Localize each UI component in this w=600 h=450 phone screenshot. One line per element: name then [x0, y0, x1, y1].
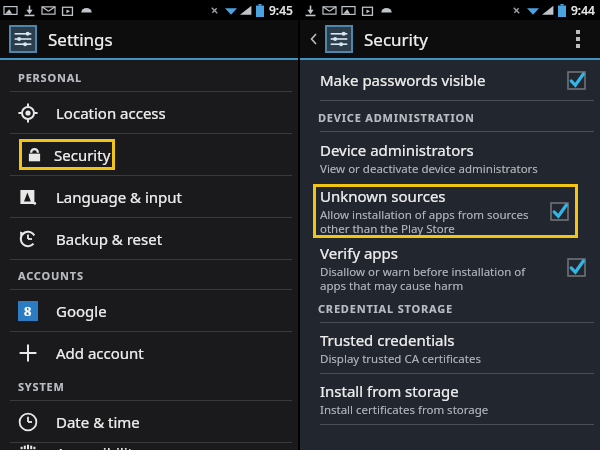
button[interactable]: Verify apps [300, 238, 600, 297]
staticText: 9:44 [571, 2, 595, 18]
button[interactable]: Backup & reset [0, 218, 298, 259]
staticText: Display trusted CA certificates [320, 351, 481, 367]
staticText: PERSONAL [18, 70, 83, 85]
staticText: Language & input [56, 187, 182, 207]
staticText: Make passwords visible [320, 70, 486, 90]
button[interactable]: Security [19, 139, 115, 170]
button[interactable]: Trusted credentials [300, 323, 600, 373]
staticText: ACCOUNTS [18, 268, 84, 283]
button[interactable]: Back [305, 30, 323, 48]
button[interactable]: Language & input [0, 176, 298, 217]
staticText: Security [364, 28, 428, 51]
button[interactable]: Toggle [550, 202, 569, 221]
staticText: Verify apps [320, 243, 398, 263]
staticText: Accessibility [56, 443, 141, 450]
button[interactable]: Settings [10, 26, 36, 52]
staticText: Location access [56, 103, 166, 123]
staticText: 9:45 [269, 2, 293, 18]
button[interactable]: More options [564, 25, 592, 53]
button[interactable]: 8 [0, 290, 298, 331]
staticText: CREDENTIAL STORAGE [318, 301, 453, 316]
button[interactable]: Date & time [0, 401, 298, 442]
staticText: Backup & reset [56, 229, 163, 249]
button[interactable]: Device administrators [300, 132, 600, 184]
button[interactable]: Toggle [567, 258, 586, 277]
button[interactable]: Unknown sources [313, 184, 578, 238]
button[interactable]: Make passwords visible [300, 60, 600, 100]
staticText: Allow installation of apps from sources … [320, 207, 529, 236]
staticText: Install certificates from storage [320, 402, 489, 418]
staticText: View or deactivate device administrators [320, 161, 538, 177]
staticText: Disallow or warn before installation of … [320, 264, 526, 293]
staticText: DEVICE ADMINISTRATION [318, 110, 475, 125]
staticText: Unknown sources [320, 186, 446, 206]
button[interactable]: Location access [0, 92, 298, 133]
button[interactable]: Toggle [567, 71, 586, 90]
staticText: Install from storage [320, 381, 459, 401]
staticText: Trusted credentials [320, 330, 455, 350]
staticText: Date & time [56, 412, 140, 432]
staticText: Google [56, 301, 107, 321]
staticText: Add account [56, 343, 144, 363]
staticText: SYSTEM [18, 379, 65, 394]
button[interactable]: Add account [0, 332, 298, 373]
button[interactable]: Accessibility [0, 443, 298, 450]
staticText: Settings [48, 28, 113, 51]
button[interactable]: Settings [326, 26, 352, 52]
staticText: 8 [24, 302, 32, 320]
staticText: Security [54, 145, 111, 165]
staticText: Device administrators [320, 140, 474, 160]
button[interactable]: Install from storage [300, 374, 600, 424]
